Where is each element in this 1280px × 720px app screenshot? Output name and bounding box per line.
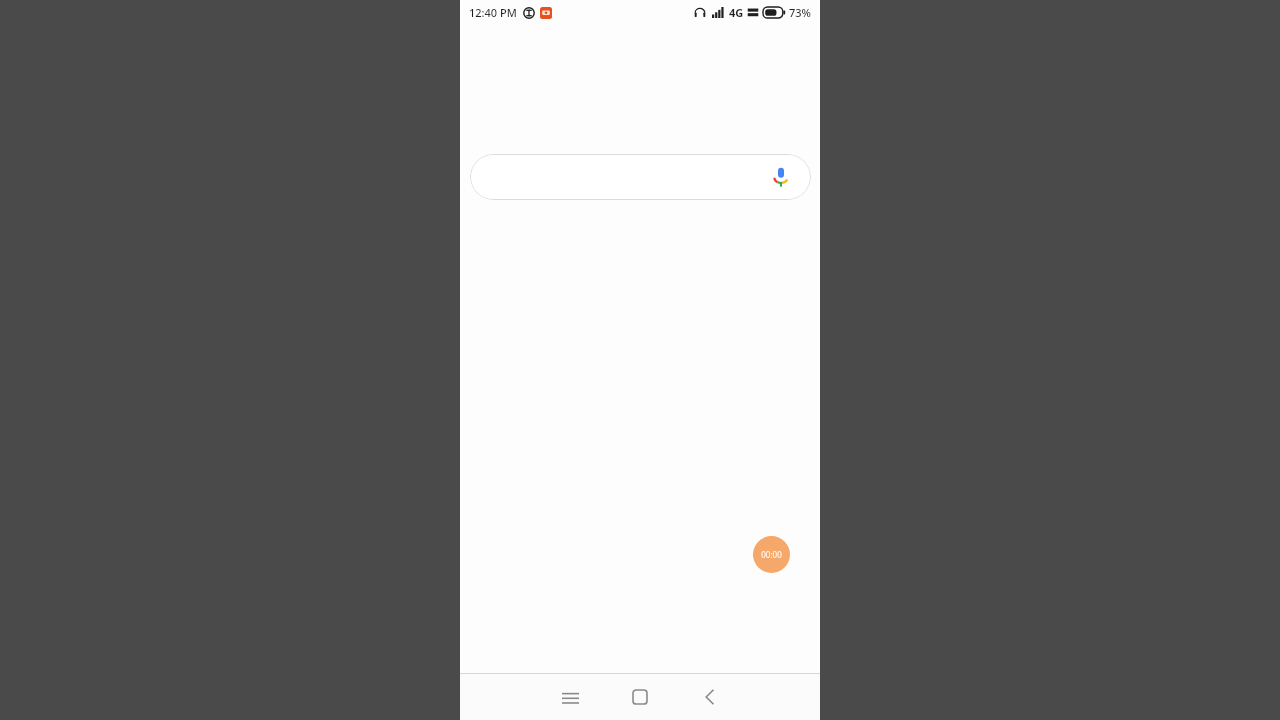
staticText: 4G: [729, 5, 744, 20]
staticText: 00:00: [761, 549, 782, 560]
button[interactable]: Screen recorder timer: [753, 536, 790, 573]
staticText: 73%: [789, 5, 811, 20]
button[interactable]: Recent apps: [535, 674, 605, 720]
button[interactable]: Home: [605, 674, 675, 720]
button[interactable]: Voice search: [769, 165, 793, 189]
staticText: 12:40 PM: [469, 5, 517, 20]
button[interactable]: Back: [675, 674, 745, 720]
button[interactable]: Voice search: [470, 154, 811, 200]
